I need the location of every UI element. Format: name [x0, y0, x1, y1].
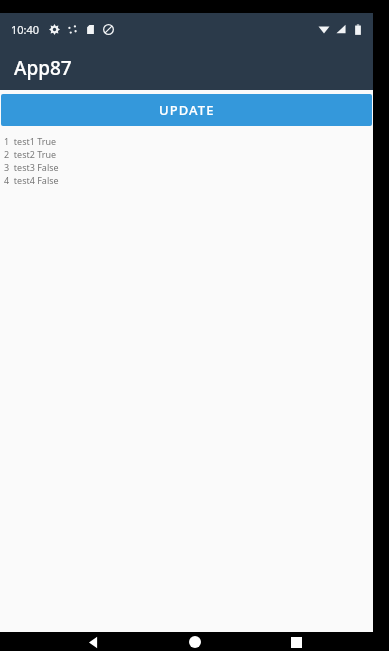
button[interactable]: Recent apps [287, 633, 305, 651]
button[interactable]: Home [186, 633, 204, 651]
staticText: 1 test1 True [4, 135, 57, 147]
button[interactable]: UPDATE [1, 94, 372, 126]
button[interactable]: 2 test2 True [0, 147, 373, 160]
staticText: App87 [14, 55, 72, 81]
staticText: 10:40 [11, 22, 40, 37]
staticText: 2 test2 True [4, 148, 57, 160]
button[interactable]: 4 test4 False [0, 173, 373, 186]
staticText: 3 test3 False [4, 161, 59, 173]
staticText: UPDATE [159, 101, 215, 119]
staticText: 4 test4 False [4, 174, 59, 186]
button[interactable]: 1 test1 True [0, 134, 373, 147]
button[interactable]: 3 test3 False [0, 160, 373, 173]
button[interactable]: Back [84, 633, 102, 651]
